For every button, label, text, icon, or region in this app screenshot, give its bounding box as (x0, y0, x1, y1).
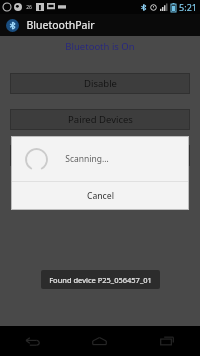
staticText: 5:21 (179, 1, 197, 13)
staticText: Cancel (87, 190, 114, 202)
staticText: 26 (26, 4, 32, 11)
staticText: BluetoothPair (26, 18, 95, 32)
staticText: Found device P25_056457_01 (49, 275, 152, 285)
button[interactable]: Paired Devices (11, 110, 189, 129)
button[interactable]: Cancel (12, 182, 188, 209)
button[interactable]: Home (66, 326, 133, 356)
staticText: 5:21 (179, 1, 197, 13)
button[interactable]: Back (0, 326, 66, 356)
staticText: 26 (26, 4, 32, 11)
staticText: Paired Devices (68, 113, 133, 126)
staticText: Bluetooth is On (65, 40, 135, 53)
staticText: Scanning… (65, 153, 109, 165)
staticText: Disable (84, 77, 117, 90)
button[interactable]: Discover (11, 146, 189, 165)
staticText: BluetoothPair (26, 18, 95, 32)
button[interactable]: Disable (11, 74, 189, 93)
staticText: Discover (81, 149, 120, 162)
button[interactable]: Recent apps (133, 326, 200, 356)
